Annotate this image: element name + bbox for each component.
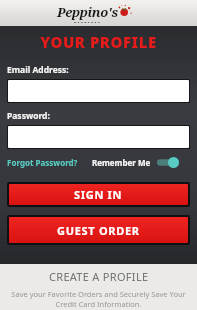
staticText: SIGN IN <box>74 187 123 202</box>
staticText: Save your Favorite Orders and Securely S… <box>3 289 194 309</box>
staticText: Forgot Password? <box>7 157 78 168</box>
button[interactable]: SIGN IN <box>9 184 188 205</box>
staticText: YOUR PROFILE <box>0 32 197 52</box>
button[interactable]: CREATE A PROFILE <box>0 264 197 310</box>
staticText: Remember Me <box>92 157 151 168</box>
staticText: Password: <box>7 110 50 122</box>
staticText: Email Address: <box>7 64 69 76</box>
staticText: GUEST ORDER <box>57 223 140 238</box>
button[interactable]: Forgot Password? <box>7 155 78 170</box>
button[interactable]: GUEST ORDER <box>9 217 188 243</box>
staticText: CREATE A PROFILE <box>49 269 149 284</box>
staticText: PIZZERIA <box>74 21 102 23</box>
staticText: Peppino's <box>57 3 118 21</box>
button[interactable]: Remember Me <box>157 157 179 168</box>
